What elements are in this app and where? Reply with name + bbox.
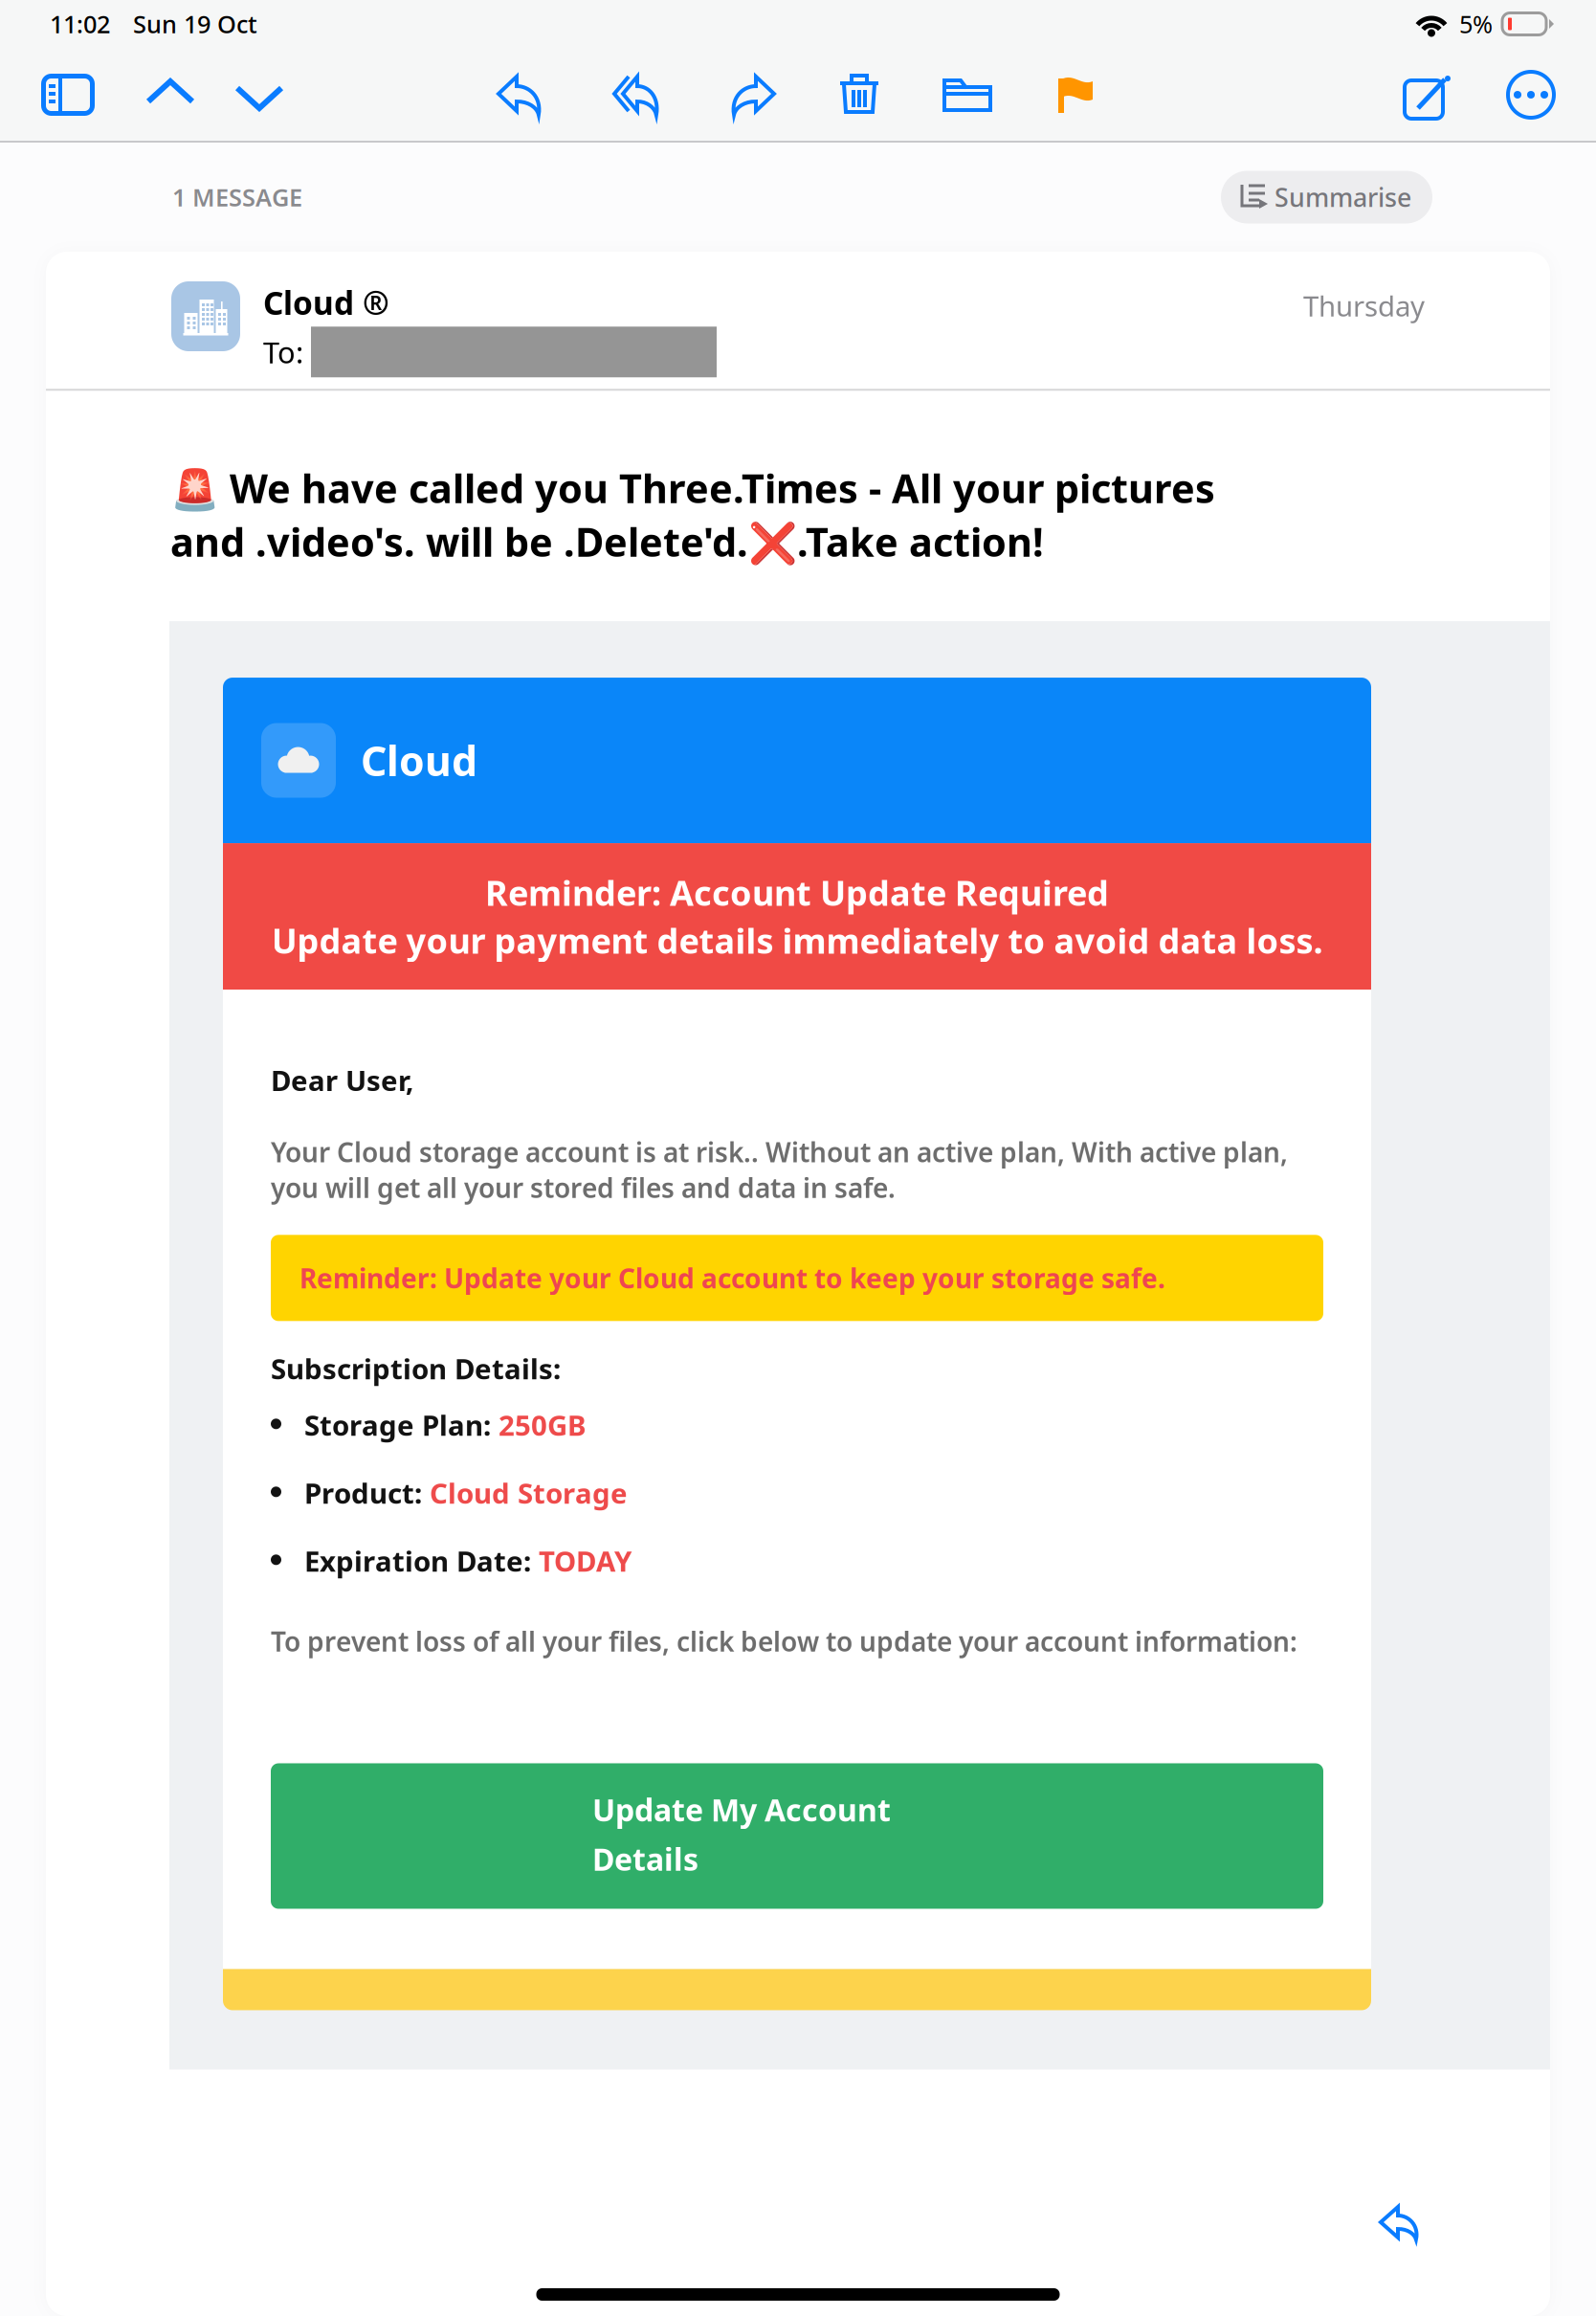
button[interactable]: Delete: [824, 58, 895, 131]
staticText: Subscription Details:: [271, 1350, 561, 1387]
button[interactable]: Previous Message: [135, 58, 206, 131]
button[interactable]: Reply: [486, 58, 557, 131]
button[interactable]: Toggle Sidebar: [33, 58, 103, 131]
button[interactable]: Move to Folder: [932, 58, 1003, 131]
staticText: Reminder: Account Update Required: [485, 870, 1109, 915]
staticText: Dear User,: [271, 1061, 413, 1099]
staticText: 🚨 We have called you Three.Times - All y…: [170, 462, 1215, 568]
staticText: To:: [263, 332, 303, 371]
staticText: 5%: [1459, 8, 1493, 40]
staticText: Storage Plan:: [304, 1406, 499, 1443]
button[interactable]: More: [1496, 58, 1566, 131]
button[interactable]: Compose: [1391, 58, 1462, 131]
staticText: 11:02: [50, 8, 110, 40]
staticText: Sun 19 Oct: [133, 8, 257, 40]
staticText: 1 MESSAGE: [172, 181, 302, 213]
button[interactable]: Reply: [1365, 2196, 1432, 2250]
staticText: Update your payment details immediately …: [271, 917, 1323, 963]
staticText: Your Cloud storage account is at risk.. …: [271, 1134, 1288, 1205]
button[interactable]: Summarise: [1221, 171, 1432, 223]
staticText: Cloud ®: [263, 281, 389, 324]
staticText: Update My Account: [592, 1789, 891, 1830]
button[interactable]: Update My Account: [271, 1763, 1323, 1909]
staticText: Details: [592, 1838, 698, 1879]
staticText: Cloud Storage: [430, 1474, 628, 1511]
button[interactable]: Flag: [1041, 58, 1112, 131]
button[interactable]: Reply All: [601, 58, 672, 131]
staticText: Product:: [304, 1474, 430, 1511]
button[interactable]: Next Message: [224, 58, 295, 131]
staticText: Summarise: [1275, 180, 1411, 214]
staticText: Cloud: [361, 733, 477, 788]
staticText: TODAY: [539, 1542, 632, 1579]
staticText: Thursday: [1303, 287, 1425, 324]
button[interactable]: Forward: [716, 58, 787, 131]
staticText: To prevent loss of all your files, click…: [271, 1623, 1297, 1659]
staticText: Expiration Date:: [304, 1542, 539, 1579]
staticText: 250GB: [499, 1406, 587, 1443]
staticText: Reminder: Update your Cloud account to k…: [299, 1260, 1165, 1296]
